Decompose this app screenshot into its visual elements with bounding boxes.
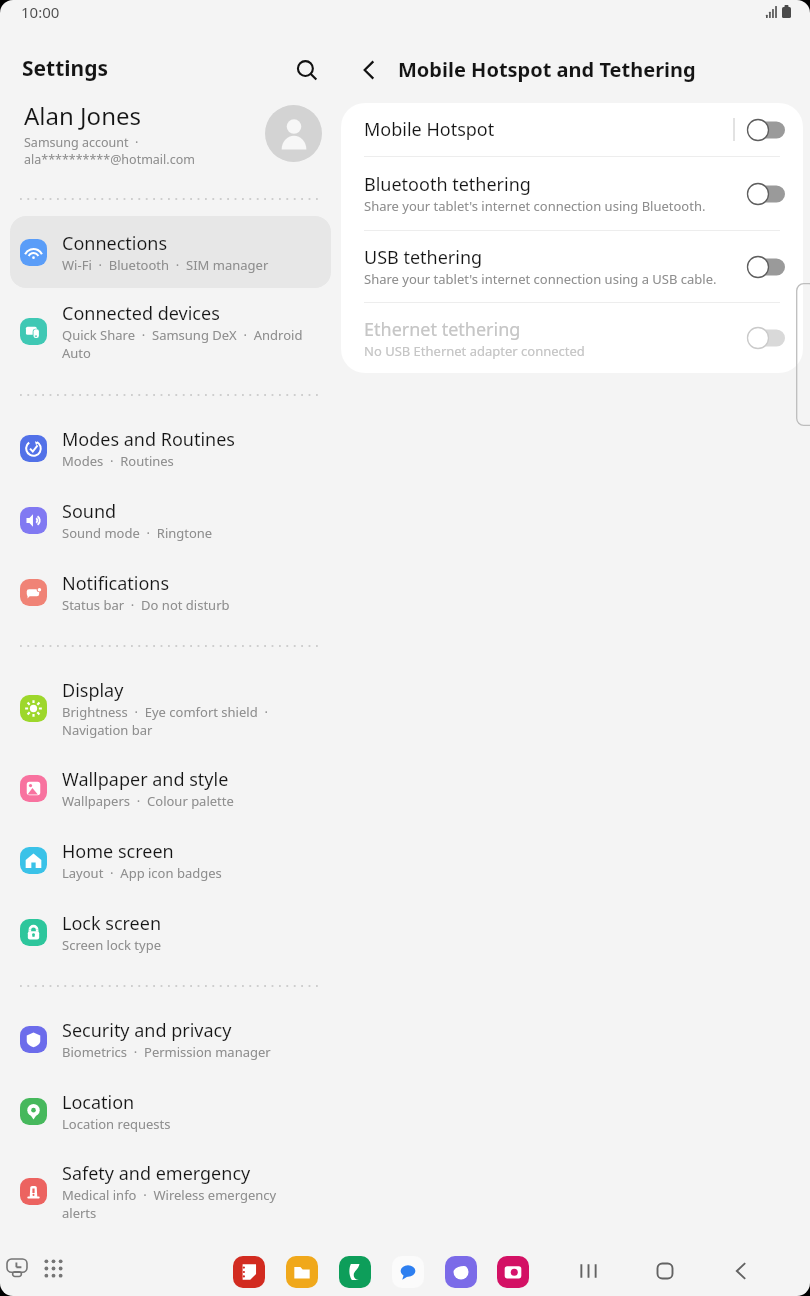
staticText: Status bar · Do not disturb bbox=[62, 596, 230, 614]
staticText: Connected devices bbox=[62, 301, 220, 326]
staticText: Brightness · Eye comfort shield · Naviga… bbox=[62, 703, 308, 739]
staticText: No USB Ethernet adapter connected bbox=[364, 342, 585, 360]
button[interactable]: Recents bbox=[570, 1252, 607, 1289]
button[interactable]: Home screen bbox=[10, 824, 331, 896]
button[interactable]: Location bbox=[10, 1075, 331, 1147]
button[interactable]: Mobile Hotspot bbox=[341, 103, 803, 156]
button[interactable]: Connections bbox=[10, 216, 331, 288]
button[interactable]: Display bbox=[10, 664, 331, 752]
staticText: Home screen bbox=[62, 839, 174, 864]
button[interactable]: Bluetooth tethering bbox=[341, 157, 803, 230]
button[interactable]: Phone bbox=[339, 1256, 371, 1288]
staticText: Display bbox=[62, 678, 124, 703]
button[interactable]: Security and privacy bbox=[10, 1003, 331, 1075]
staticText: Ethernet tethering bbox=[364, 317, 521, 342]
staticText: Wallpaper and style bbox=[62, 767, 229, 792]
button[interactable]: Recent panel bbox=[1, 1252, 33, 1284]
staticText: Medical info · Wireless emergency alerts bbox=[62, 1186, 308, 1222]
button[interactable]: Files bbox=[286, 1256, 318, 1288]
staticText: Sound mode · Ringtone bbox=[62, 524, 213, 542]
button[interactable]: Wallpaper and style bbox=[10, 752, 331, 824]
staticText: Share your tablet's internet connection … bbox=[364, 197, 706, 215]
staticText: Connections bbox=[62, 231, 168, 256]
button[interactable]: Alan Jones bbox=[0, 99, 341, 173]
button[interactable]: Sound bbox=[10, 484, 331, 556]
staticText: ala**********@hotmail.com bbox=[24, 151, 195, 167]
staticText: Quick Share · Samsung DeX · Android Auto bbox=[62, 326, 308, 362]
staticText: Safety and emergency bbox=[62, 1161, 251, 1186]
button[interactable]: Home bbox=[646, 1252, 683, 1289]
button[interactable]: Notifications bbox=[10, 556, 331, 628]
button[interactable]: Ethernet tethering bbox=[341, 303, 803, 373]
staticText: Samsung account · bbox=[24, 134, 139, 151]
button[interactable]: Search bbox=[285, 50, 323, 88]
staticText: Wi-Fi · Bluetooth · SIM manager bbox=[62, 256, 269, 274]
staticText: USB tethering bbox=[364, 245, 483, 270]
staticText: Bluetooth tethering bbox=[364, 172, 531, 197]
button[interactable]: Toggle bbox=[747, 183, 785, 205]
staticText: Modes and Routines bbox=[62, 427, 235, 452]
staticText: Wallpapers · Colour palette bbox=[62, 792, 234, 810]
staticText: Security and privacy bbox=[62, 1018, 232, 1043]
staticText: Settings bbox=[22, 54, 109, 83]
staticText: Biometrics · Permission manager bbox=[62, 1043, 271, 1061]
button[interactable]: Internet bbox=[445, 1256, 477, 1288]
button[interactable]: Apps bbox=[37, 1252, 69, 1284]
button[interactable]: Back bbox=[722, 1252, 759, 1289]
staticText: Mobile Hotspot bbox=[364, 117, 495, 142]
staticText: Notifications bbox=[62, 571, 170, 596]
staticText: Layout · App icon badges bbox=[62, 864, 222, 882]
staticText: Modes · Routines bbox=[62, 452, 174, 470]
staticText: 10:00 bbox=[21, 2, 60, 22]
button[interactable]: Toggle bbox=[747, 327, 785, 349]
staticText: Lock screen bbox=[62, 911, 162, 936]
button[interactable]: Notes bbox=[233, 1256, 265, 1288]
button[interactable]: Back bbox=[352, 53, 386, 87]
button[interactable]: Toggle bbox=[747, 119, 785, 141]
button[interactable]: USB tethering bbox=[341, 231, 803, 302]
button[interactable]: Camera bbox=[497, 1256, 529, 1288]
button[interactable]: Toggle bbox=[747, 256, 785, 278]
button[interactable]: Safety and emergency bbox=[10, 1147, 331, 1235]
staticText: Share your tablet's internet connection … bbox=[364, 270, 717, 288]
staticText: Location requests bbox=[62, 1115, 171, 1133]
staticText: Alan Jones bbox=[24, 99, 141, 132]
button[interactable]: Connected devices bbox=[10, 288, 331, 374]
button[interactable]: Lock screen bbox=[10, 896, 331, 968]
staticText: Location bbox=[62, 1090, 135, 1115]
button[interactable]: Messages bbox=[392, 1256, 424, 1288]
staticText: Screen lock type bbox=[62, 936, 161, 954]
staticText: Mobile Hotspot and Tethering bbox=[398, 56, 696, 83]
button[interactable]: Modes and Routines bbox=[10, 412, 331, 484]
staticText: Sound bbox=[62, 499, 117, 524]
